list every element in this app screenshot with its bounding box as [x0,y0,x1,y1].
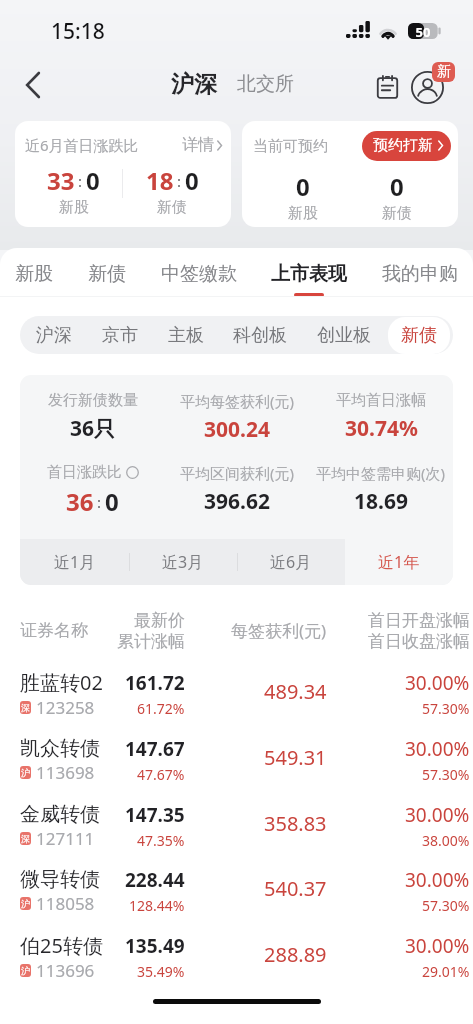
staticText: 61.72% [137,699,185,718]
staticText: 新债 [88,262,126,286]
staticText: 0 [185,164,199,197]
staticText: 首日涨跌比 [47,463,122,482]
staticText: 30.00% [405,933,470,959]
button[interactable]: 科创板 [220,317,300,354]
button[interactable]: 预约打新 [373,136,443,155]
staticText: 50 [411,23,435,41]
staticText: 近1月 [54,551,96,573]
staticText: 123258 [36,696,95,719]
staticText: 沪深 [36,324,72,347]
button[interactable]: 胜蓝转02 [0,661,473,727]
staticText: 首日开盘涨幅 [368,610,470,631]
button[interactable]: 上市表现 [271,262,347,297]
button[interactable]: 微导转债 [0,858,473,924]
staticText: 平均中签需申购(次) [316,463,446,483]
staticText: 30.00% [405,802,470,828]
button[interactable]: 我的申购 [382,262,458,297]
staticText: 近3月 [162,551,204,573]
button[interactable]: 近6月 [237,539,345,585]
staticText: 沪 [21,965,30,976]
staticText: 0 [296,170,310,203]
staticText: 15:18 [51,17,105,46]
staticText: 首日收盘涨幅 [368,631,470,652]
staticText: 113698 [36,761,95,784]
staticText: 微导转债 [20,867,100,892]
staticText: 30.74% [345,414,418,443]
staticText: 47.35% [137,831,185,850]
button[interactable]: Records [367,66,407,106]
button[interactable]: 新债 [388,317,450,354]
staticText: 489.34 [264,678,327,705]
staticText: 新股 [15,262,53,286]
button[interactable]: 创业板 [304,317,384,354]
button[interactable]: 新股 [15,262,53,297]
button[interactable]: 凯众转债 [0,727,473,793]
button[interactable]: 沪深 [171,70,217,99]
staticText: 147.35 [125,802,185,828]
staticText: 科创板 [233,324,287,347]
staticText: 288.89 [264,941,327,968]
button[interactable]: 金威转债 [0,793,473,859]
button[interactable]: Back [14,66,52,104]
staticText: 47.67% [137,765,185,784]
staticText: : [78,171,83,191]
button[interactable]: 近1年 [345,539,453,585]
staticText: : [177,171,182,191]
staticText: 中签缴款 [161,262,237,286]
staticText: 0 [390,170,404,203]
button[interactable]: 近1月 [20,539,129,585]
staticText: 预约打新 [373,136,433,155]
staticText: 平均每签获利(元) [180,391,295,411]
staticText: 147.67 [125,736,185,762]
staticText: 伯25转债 [20,932,103,959]
staticText: 30.00% [405,867,470,893]
staticText: 396.62 [204,487,270,516]
staticText: 当前可预约 [253,137,328,156]
staticText: 540.37 [264,875,327,902]
staticText: 京市 [102,324,138,347]
button[interactable]: Profile [409,62,455,108]
staticText: 北交所 [237,72,294,96]
staticText: 549.31 [264,744,327,771]
button[interactable]: 中签缴款 [161,262,237,297]
staticText: 18.69 [354,487,408,516]
staticText: 累计涨幅 [117,631,185,652]
staticText: 57.30% [422,699,470,718]
staticText: 300.24 [204,415,270,444]
staticText: 近6月 [270,551,312,573]
staticText: 近6月首日涨跌比 [25,135,139,155]
staticText: 平均首日涨幅 [336,391,426,410]
staticText: 新债 [382,204,412,223]
staticText: 我的申购 [382,262,458,286]
staticText: 33 [47,164,75,197]
staticText: 118058 [36,892,95,915]
button[interactable]: 京市 [89,317,151,354]
staticText: 沪深 [171,70,217,99]
staticText: 近1年 [378,551,420,573]
staticText: 金威转债 [20,802,100,827]
staticText: 创业板 [317,324,371,347]
button[interactable]: 近6月首日涨跌比 [15,121,231,227]
staticText: 凯众转债 [20,736,100,761]
staticText: 36 [66,485,94,518]
staticText: 0 [86,164,100,197]
staticText: 最新价 [134,610,185,631]
staticText: 深 [21,833,30,844]
button[interactable]: 北交所 [237,72,294,96]
button[interactable]: 新债 [88,262,126,297]
button[interactable]: 当前可预约 [242,121,458,227]
staticText: 新股 [59,198,89,217]
staticText: 新股 [288,204,318,223]
staticText: 新债 [401,324,437,347]
staticText: 128.44% [129,896,185,915]
button[interactable]: 伯25转债 [0,924,473,990]
staticText: 30.00% [405,736,470,762]
button[interactable]: 沪深 [23,317,85,354]
staticText: 18 [146,164,174,197]
staticText: 新 [437,63,451,81]
button[interactable]: 主板 [155,317,217,354]
staticText: 发行新债数量 [48,391,138,410]
button[interactable]: 近3月 [129,539,237,585]
staticText: 主板 [168,324,204,347]
staticText: 详情 [182,135,214,155]
